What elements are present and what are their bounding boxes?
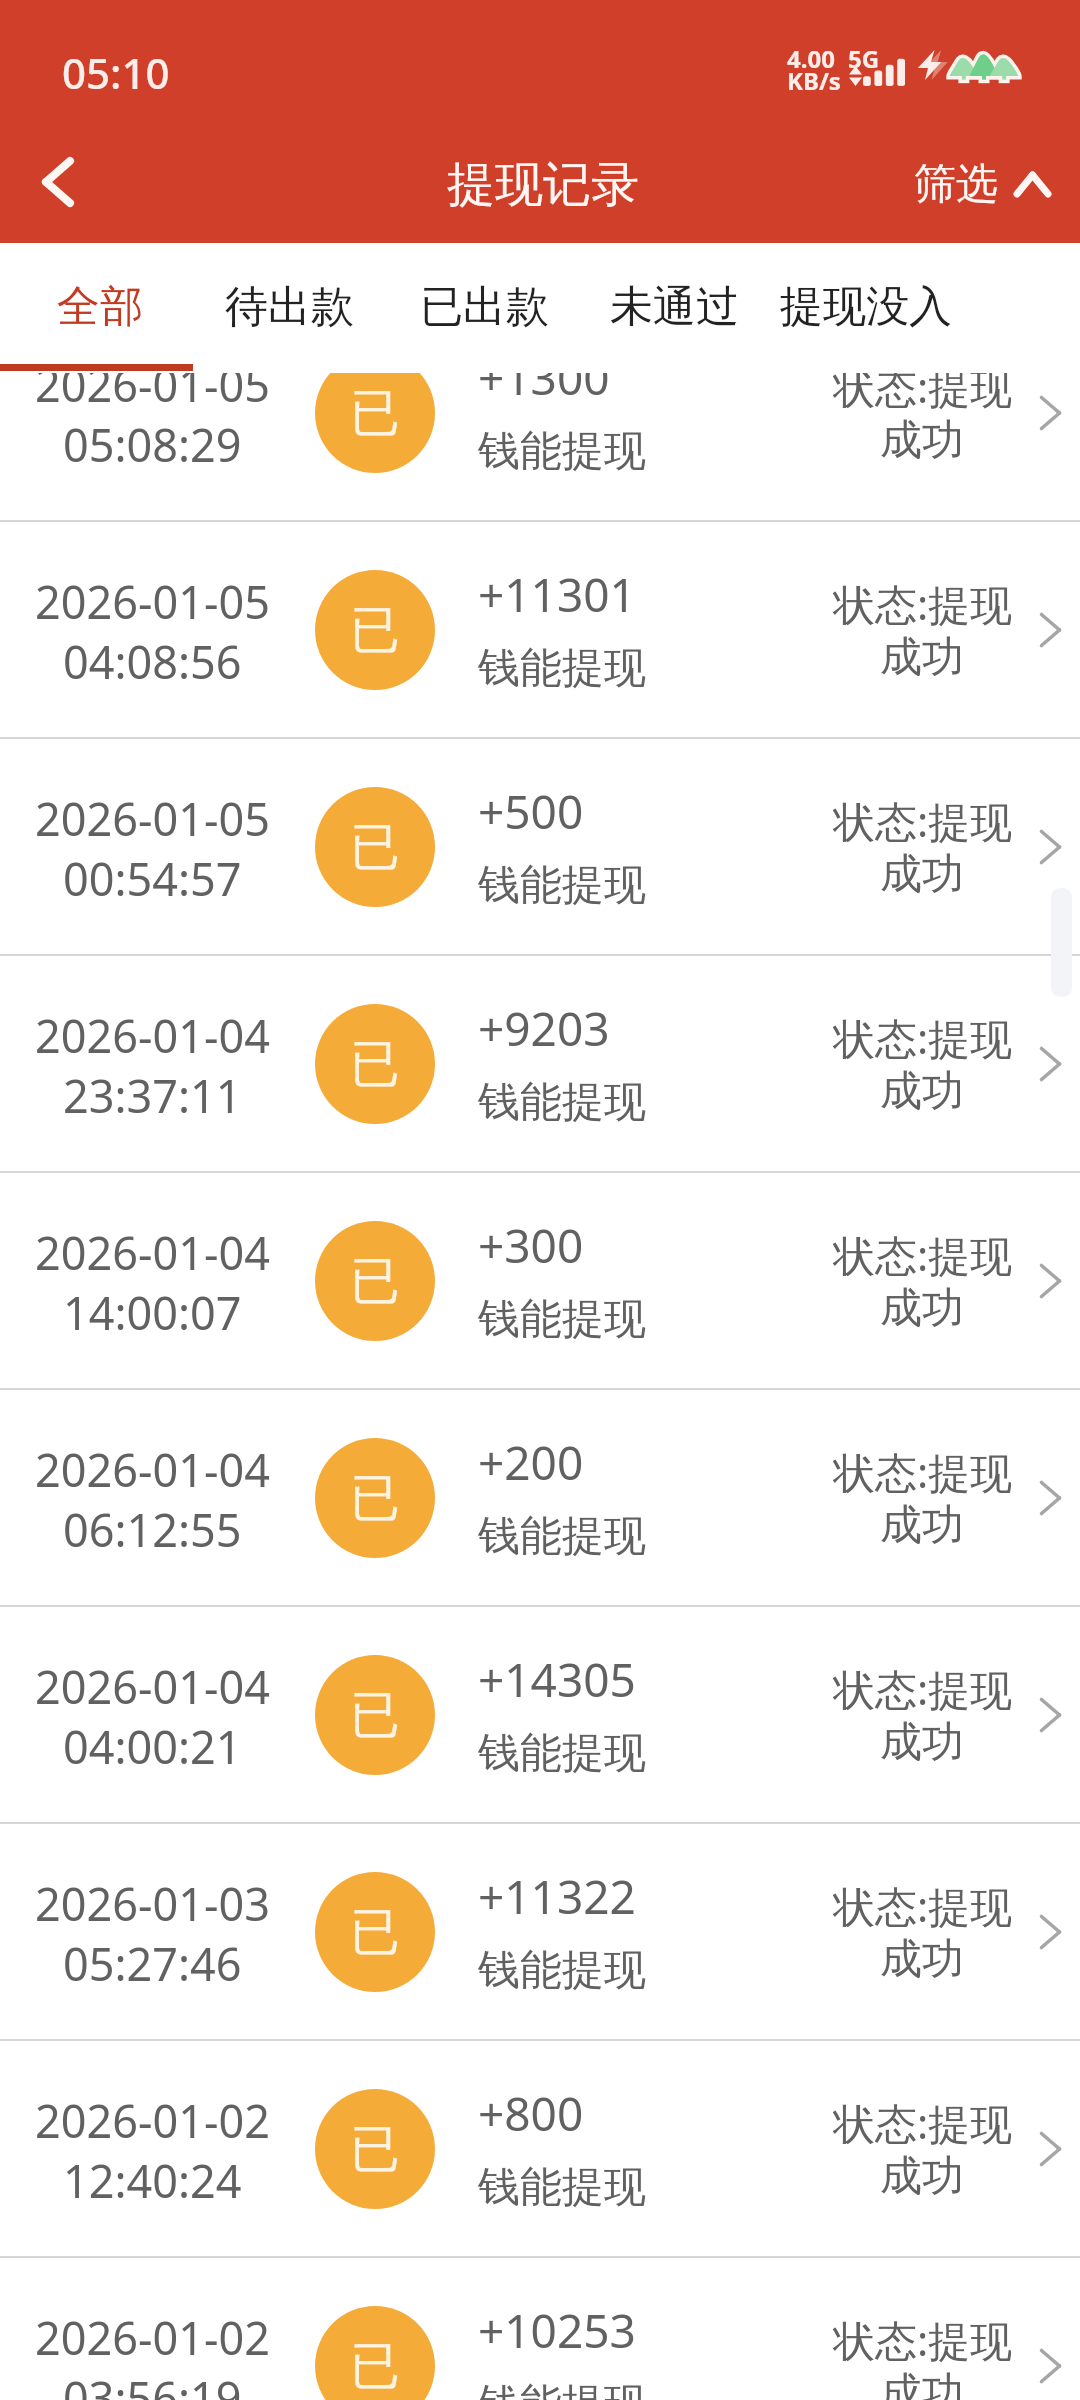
button[interactable]: Open detail [1020, 2330, 1080, 2400]
staticText: 已 [350, 599, 400, 662]
staticText: +300 [478, 1214, 584, 1277]
button[interactable]: 待出款 [225, 280, 354, 334]
button[interactable]: Open detail [1020, 2113, 1080, 2185]
staticText: 05:08:29 [63, 414, 242, 475]
staticText: 钱能提现 [478, 425, 646, 478]
button[interactable]: Open detail [1020, 1896, 1080, 1968]
staticText: 03:56:19 [63, 2367, 242, 2400]
staticText: 12:40:24 [63, 2150, 242, 2211]
staticText: 筛选 [914, 158, 998, 211]
staticText: 已 [350, 1250, 400, 1313]
staticText: 钱能提现 [478, 642, 646, 695]
staticText: +9203 [478, 997, 610, 1060]
staticText: +1300 [478, 373, 610, 409]
staticText: 钱能提现 [478, 2378, 646, 2400]
button[interactable]: 2026-01-02 [0, 2041, 1080, 2256]
staticText: 钱能提现 [478, 1076, 646, 1129]
staticText: 钱能提现 [478, 1944, 646, 1997]
staticText: KB/s [787, 64, 841, 97]
staticText: 钱能提现 [478, 1293, 646, 1346]
staticText: 成功 [880, 1716, 964, 1769]
staticText: 状态:提现 [833, 1877, 1011, 1934]
staticText: 2026-01-04 [35, 1656, 270, 1717]
staticText: 成功 [880, 2367, 964, 2400]
staticText: 5G [848, 42, 880, 75]
staticText: 已 [350, 382, 400, 445]
staticText: 状态:提现 [833, 575, 1011, 632]
staticText: 05:10 [62, 44, 170, 101]
button[interactable]: 未通过 [610, 280, 739, 334]
button[interactable]: 2026-01-05 [0, 522, 1080, 737]
staticText: 2026-01-04 [35, 1222, 270, 1283]
staticText: 钱能提现 [478, 1510, 646, 1563]
staticText: 状态:提现 [833, 2094, 1011, 2151]
staticText: +11322 [478, 1865, 636, 1928]
button[interactable]: Open detail [1020, 811, 1080, 883]
staticText: 06:12:55 [63, 1499, 242, 1560]
button[interactable]: 提现没入 [780, 280, 952, 334]
button[interactable]: 2026-01-04 [0, 1607, 1080, 1822]
staticText: 未通过 [610, 280, 739, 334]
button[interactable]: Open detail [1020, 1679, 1080, 1751]
button[interactable]: 全部 [57, 280, 143, 334]
staticText: 状态:提现 [833, 1226, 1011, 1283]
staticText: 已 [350, 1467, 400, 1530]
staticText: 成功 [880, 1282, 964, 1335]
staticText: 00:54:57 [63, 848, 242, 909]
staticText: 04:08:56 [63, 631, 242, 692]
staticText: 成功 [880, 848, 964, 901]
button[interactable]: Open detail [1020, 1028, 1080, 1100]
staticText: 提现记录 [447, 155, 639, 215]
staticText: 状态:提现 [833, 1009, 1011, 1066]
button[interactable]: 已出款 [420, 280, 549, 334]
staticText: 已出款 [420, 280, 549, 334]
button[interactable]: Open detail [1020, 377, 1080, 449]
staticText: 已 [350, 1684, 400, 1747]
button[interactable]: Open detail [1020, 1462, 1080, 1534]
staticText: 状态:提现 [833, 1443, 1011, 1500]
staticText: 已 [350, 816, 400, 879]
staticText: 钱能提现 [478, 859, 646, 912]
button[interactable]: 2026-01-04 [0, 956, 1080, 1171]
staticText: 钱能提现 [478, 1727, 646, 1780]
staticText: 2026-01-04 [35, 1005, 270, 1066]
staticText: 2026-01-05 [35, 788, 270, 849]
staticText: +14305 [478, 1648, 636, 1711]
button[interactable]: Open detail [1020, 1245, 1080, 1317]
staticText: 已 [350, 1901, 400, 1964]
button[interactable]: 2026-01-05 [0, 739, 1080, 954]
button[interactable]: 2026-01-03 [0, 1824, 1080, 2039]
staticText: 2026-01-02 [35, 2090, 270, 2151]
staticText: 状态:提现 [833, 373, 1011, 415]
button[interactable]: 筛选 [914, 158, 1051, 211]
button[interactable]: 2026-01-04 [0, 1390, 1080, 1605]
button[interactable]: 2026-01-04 [0, 1173, 1080, 1388]
staticText: 成功 [880, 1065, 964, 1118]
staticText: 钱能提现 [478, 2161, 646, 2214]
staticText: 已 [350, 2118, 400, 2181]
staticText: 已 [350, 1033, 400, 1096]
staticText: 状态:提现 [833, 2311, 1011, 2368]
staticText: 04:00:21 [63, 1716, 242, 1777]
staticText: 成功 [880, 2150, 964, 2203]
staticText: 全部 [57, 280, 143, 334]
staticText: 提现没入 [780, 280, 952, 334]
staticText: 05:27:46 [63, 1933, 242, 1994]
staticText: +200 [478, 1431, 584, 1494]
staticText: 已 [350, 2335, 400, 2398]
button[interactable]: 2026-01-05 [0, 373, 1080, 520]
staticText: +500 [478, 780, 584, 843]
button[interactable]: Back [8, 132, 108, 232]
staticText: +11301 [478, 563, 636, 626]
staticText: 2026-01-02 [35, 2307, 270, 2368]
staticText: 2026-01-05 [35, 373, 270, 415]
staticText: +800 [478, 2082, 584, 2145]
staticText: 4.00 [787, 42, 835, 75]
staticText: 23:37:11 [63, 1065, 242, 1126]
staticText: 2026-01-04 [35, 1439, 270, 1500]
button[interactable]: Open detail [1020, 594, 1080, 666]
staticText: 2026-01-03 [35, 1873, 270, 1934]
staticText: 成功 [880, 1933, 964, 1986]
staticText: 待出款 [225, 280, 354, 334]
button[interactable]: 2026-01-02 [0, 2258, 1080, 2400]
